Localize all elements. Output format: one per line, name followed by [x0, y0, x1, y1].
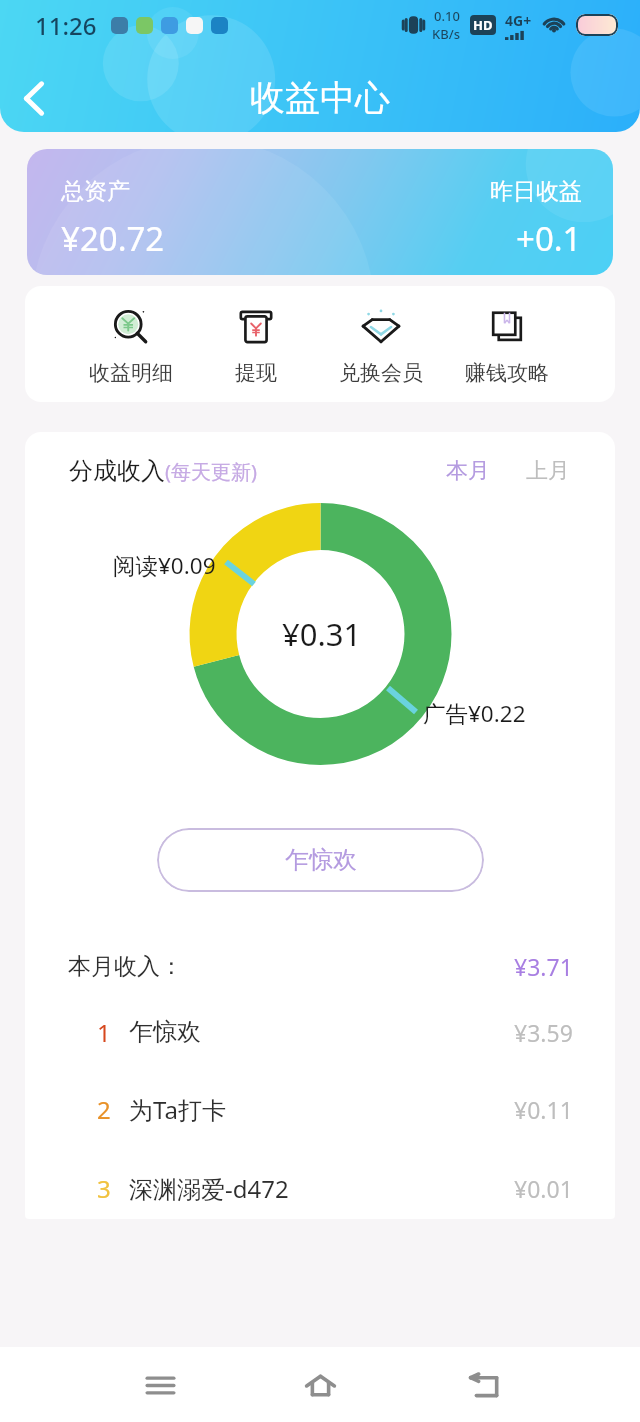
button[interactable]: 2 [25, 1074, 615, 1144]
staticText: 为Ta打卡 [129, 1093, 226, 1126]
button[interactable]: 1 [25, 997, 615, 1067]
staticText: 收益中心 [250, 76, 390, 120]
staticText: HD [473, 16, 493, 34]
button[interactable]: Back [4, 68, 64, 128]
staticText: KB/s [432, 25, 461, 43]
staticText: 1 [97, 1016, 111, 1049]
staticText: +0.1 [516, 216, 582, 261]
staticText: 广告¥0.22 [423, 698, 526, 729]
staticText: 3 [97, 1172, 111, 1205]
staticText: 11:26 [35, 9, 97, 42]
staticText: 2 [97, 1093, 111, 1126]
staticText: ¥0.11 [514, 1094, 573, 1125]
staticText: 收益明细 [89, 360, 173, 386]
staticText: 本月收入： [68, 952, 183, 981]
staticText: 昨日收益 [490, 177, 582, 206]
staticText: 4G+ [505, 11, 532, 30]
staticText: ¥3.59 [514, 1017, 573, 1048]
staticText: 兑换会员 [339, 360, 423, 386]
button[interactable]: 赚钱攻略 [444, 297, 570, 392]
button[interactable]: 乍惊欢 [157, 828, 484, 892]
staticText: 阅读¥0.09 [113, 550, 216, 581]
staticText: 赚钱攻略 [465, 360, 549, 386]
button[interactable]: 提现 [193, 297, 318, 392]
button[interactable]: 兑换会员 [318, 297, 444, 392]
staticText: 0.10 [434, 7, 460, 25]
staticText: 分成收入 [69, 456, 165, 486]
staticText: 提现 [235, 360, 277, 386]
staticText: ¥0.31 [282, 613, 362, 655]
button[interactable]: 收益明细 [68, 297, 193, 392]
button[interactable]: Recent apps [127, 1352, 193, 1418]
staticText: 乍惊欢 [129, 1017, 201, 1047]
staticText: 乍惊欢 [285, 845, 357, 875]
staticText: ¥0.01 [514, 1173, 573, 1204]
button[interactable]: 上月 [523, 449, 573, 493]
button[interactable]: Back [451, 1352, 517, 1418]
staticText: 上月 [526, 457, 570, 485]
staticText: ¥3.71 [514, 951, 573, 982]
button[interactable]: 本月 [443, 449, 493, 493]
staticText: (每天更新) [165, 458, 257, 485]
staticText: ¥20.72 [61, 216, 165, 261]
staticText: 总资产 [61, 177, 130, 206]
button[interactable]: Home [287, 1352, 353, 1418]
button[interactable]: 3 [25, 1153, 615, 1219]
staticText: 深渊溺爱-d472 [129, 1172, 289, 1205]
staticText: 本月 [446, 457, 490, 485]
